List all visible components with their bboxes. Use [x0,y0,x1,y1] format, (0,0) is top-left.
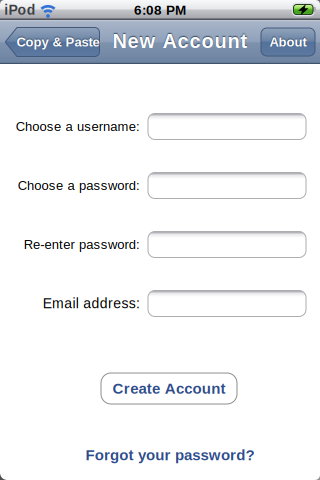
button[interactable]: Email address: [148,290,306,316]
button[interactable]: About [261,28,315,56]
staticText: iPod [4,2,36,18]
staticText: Email address: [43,296,140,311]
button[interactable]: Re-enter password: [148,231,306,257]
staticText: Create Account [113,380,225,397]
button[interactable]: Create Account [101,373,237,404]
staticText: Forgot your password? [85,447,254,463]
button[interactable]: Copy & Paste [5,27,100,57]
staticText: About [269,35,306,49]
staticText: Choose a username: [16,119,140,134]
button[interactable]: Forgot your password? [85,447,254,463]
button[interactable]: Choose a username: [148,113,306,139]
staticText: Copy & Paste [16,35,99,49]
staticText: Re-enter password: [24,237,140,252]
staticText: New Account [112,30,247,52]
staticText: 6:08 PM [134,2,186,18]
button[interactable]: Choose a password: [148,172,306,198]
staticText: Choose a password: [18,178,140,193]
